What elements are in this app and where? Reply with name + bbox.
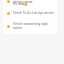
- button[interactable]: Finish researching topic article: [0, 0, 64, 64]
- button[interactable]: Finish To-Do List tips article: [0, 0, 64, 64]
- staticText: Finish To-Do List tips article: [13, 11, 55, 15]
- staticText: for today: [13, 2, 26, 6]
- button[interactable]: design review: [0, 0, 64, 64]
- staticText: Finish researching topic article: [13, 22, 55, 30]
- staticText: design review: [13, 0, 33, 4]
